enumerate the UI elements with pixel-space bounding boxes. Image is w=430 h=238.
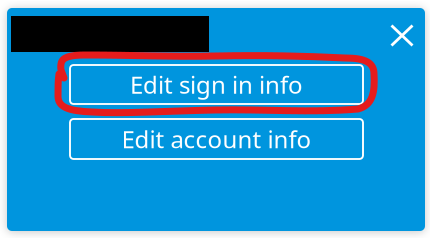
button[interactable]: Close: [390, 24, 414, 47]
staticText: Edit account info: [121, 123, 311, 155]
staticText: Edit sign in info: [130, 69, 303, 100]
button[interactable]: Edit sign in info: [70, 65, 363, 104]
button[interactable]: Edit account info: [70, 119, 363, 159]
